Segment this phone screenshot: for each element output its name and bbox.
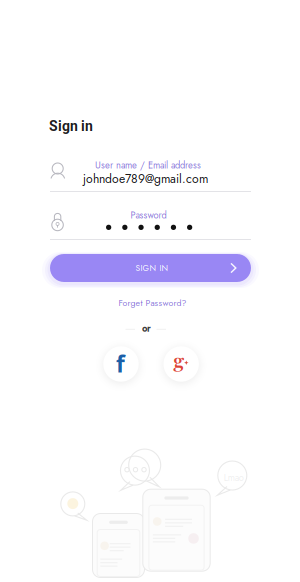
staticText: Password	[130, 208, 166, 222]
staticText: or	[142, 322, 151, 335]
staticText: Sign in	[49, 118, 93, 134]
staticText: User name / Email address	[95, 158, 201, 172]
staticText: g	[173, 348, 184, 375]
button[interactable]: Forget Password?	[52, 296, 253, 309]
button[interactable]: Sign in with Google	[163, 346, 199, 382]
button[interactable]: Sign in with Facebook	[103, 346, 139, 382]
staticText: johndoe789@gmail.com	[83, 170, 208, 187]
button[interactable]: SIGN IN	[50, 254, 251, 282]
staticText: f	[116, 348, 125, 379]
staticText: Forget Password?	[118, 297, 186, 309]
staticText: SIGN IN	[135, 262, 168, 274]
staticText: Lmao	[224, 471, 244, 484]
